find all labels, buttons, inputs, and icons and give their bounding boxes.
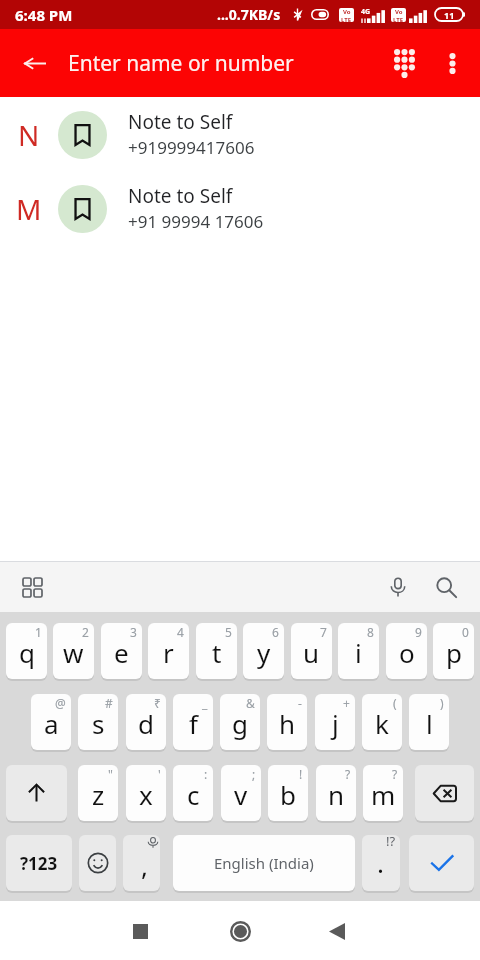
staticText: 11 xyxy=(444,9,455,21)
staticText: 1 xyxy=(35,624,42,640)
button[interactable]: o xyxy=(386,623,427,679)
staticText: f xyxy=(189,706,198,741)
button[interactable]: c xyxy=(173,765,213,821)
staticText: m xyxy=(371,777,396,812)
button[interactable]: Back xyxy=(309,903,365,959)
button[interactable]: e xyxy=(101,623,142,679)
staticText: ; xyxy=(252,766,256,782)
staticText: N xyxy=(18,116,40,154)
staticText: Note to Self xyxy=(128,109,233,135)
staticText: Vo xyxy=(395,8,403,16)
button[interactable]: a xyxy=(31,694,71,750)
staticText: x xyxy=(139,777,153,812)
button[interactable]: b xyxy=(268,765,308,821)
staticText: 8 xyxy=(367,624,374,640)
button[interactable]: q xyxy=(6,623,47,679)
staticText: English (India) xyxy=(214,853,314,873)
staticText: 6 xyxy=(272,624,279,640)
button[interactable]: More options xyxy=(428,39,476,87)
button[interactable]: Back xyxy=(10,39,58,87)
staticText: : xyxy=(204,766,208,782)
button[interactable]: N xyxy=(0,111,480,159)
button[interactable]: u xyxy=(291,623,332,679)
button[interactable]: l xyxy=(409,694,449,750)
staticText: i xyxy=(355,635,362,670)
staticText: t xyxy=(212,635,222,670)
staticText: r xyxy=(163,635,174,670)
button[interactable]: g xyxy=(220,694,260,750)
staticText: q xyxy=(19,635,35,670)
button[interactable]: Dialpad xyxy=(380,39,428,87)
staticText: p xyxy=(446,635,462,670)
staticText: n xyxy=(328,777,345,812)
staticText: ...0.7KB/s xyxy=(217,5,281,24)
button[interactable]: h xyxy=(267,694,307,750)
staticText: 4 xyxy=(177,624,184,640)
staticText: " xyxy=(108,766,113,782)
staticText: d xyxy=(138,706,154,741)
staticText: !? xyxy=(386,835,396,850)
button[interactable]: p xyxy=(433,623,474,679)
staticText: h xyxy=(279,706,296,741)
button[interactable]: Shift xyxy=(6,765,67,821)
staticText: Vo xyxy=(343,8,351,16)
staticText: g xyxy=(232,706,248,741)
staticText: ?123 xyxy=(20,852,58,875)
staticText: @ xyxy=(55,695,66,711)
button[interactable]: x xyxy=(126,765,166,821)
staticText: M xyxy=(16,190,42,228)
staticText: & xyxy=(246,695,255,711)
button[interactable]: Emoji xyxy=(79,835,116,891)
button[interactable]: M xyxy=(0,185,480,233)
button[interactable]: z xyxy=(78,765,118,821)
staticText: , xyxy=(141,848,148,883)
button[interactable]: w xyxy=(53,623,94,679)
staticText: k xyxy=(375,706,389,741)
staticText: ! xyxy=(299,766,303,782)
button[interactable]: k xyxy=(362,694,402,750)
staticText: e xyxy=(114,635,129,670)
staticText: s xyxy=(92,706,105,741)
button[interactable]: English (India) xyxy=(173,835,355,891)
staticText: Note to Self xyxy=(128,183,233,209)
staticText: l xyxy=(426,706,433,741)
staticText: w xyxy=(63,635,84,670)
staticText: LTE xyxy=(393,16,404,22)
staticText: y xyxy=(257,635,271,670)
staticText: . xyxy=(377,845,384,880)
staticText: 9 xyxy=(415,624,422,640)
staticText: ? xyxy=(345,766,351,782)
button[interactable]: Recent apps xyxy=(112,903,168,959)
staticText: z xyxy=(92,777,105,812)
button[interactable]: d xyxy=(126,694,166,750)
button[interactable]: , xyxy=(123,835,160,891)
staticText: 4G xyxy=(361,7,371,17)
staticText: u xyxy=(303,635,320,670)
button[interactable]: j xyxy=(315,694,355,750)
button[interactable]: Voice input xyxy=(382,571,414,603)
button[interactable]: y xyxy=(243,623,284,679)
button[interactable]: Home xyxy=(212,903,268,959)
staticText: 3 xyxy=(130,624,137,640)
button[interactable]: m xyxy=(363,765,403,821)
button[interactable]: n xyxy=(316,765,356,821)
button[interactable]: t xyxy=(196,623,237,679)
button[interactable]: Toolbar xyxy=(18,573,46,601)
button[interactable]: Search xyxy=(430,571,462,603)
button[interactable]: v xyxy=(221,765,261,821)
staticText: Enter name or number xyxy=(68,49,294,78)
staticText: v xyxy=(234,777,248,812)
staticText: 6:48 PM xyxy=(15,5,73,25)
staticText: # xyxy=(105,695,113,711)
button[interactable]: s xyxy=(78,694,118,750)
button[interactable]: r xyxy=(148,623,189,679)
button[interactable]: Backspace xyxy=(415,765,474,821)
button[interactable]: ?123 xyxy=(6,835,72,891)
button[interactable]: !? xyxy=(362,835,400,891)
button[interactable]: f xyxy=(173,694,213,750)
staticText: c xyxy=(187,777,200,812)
button[interactable]: i xyxy=(338,623,379,679)
staticText: b xyxy=(280,777,296,812)
staticText: a xyxy=(44,706,59,741)
button[interactable]: Enter xyxy=(409,835,474,891)
